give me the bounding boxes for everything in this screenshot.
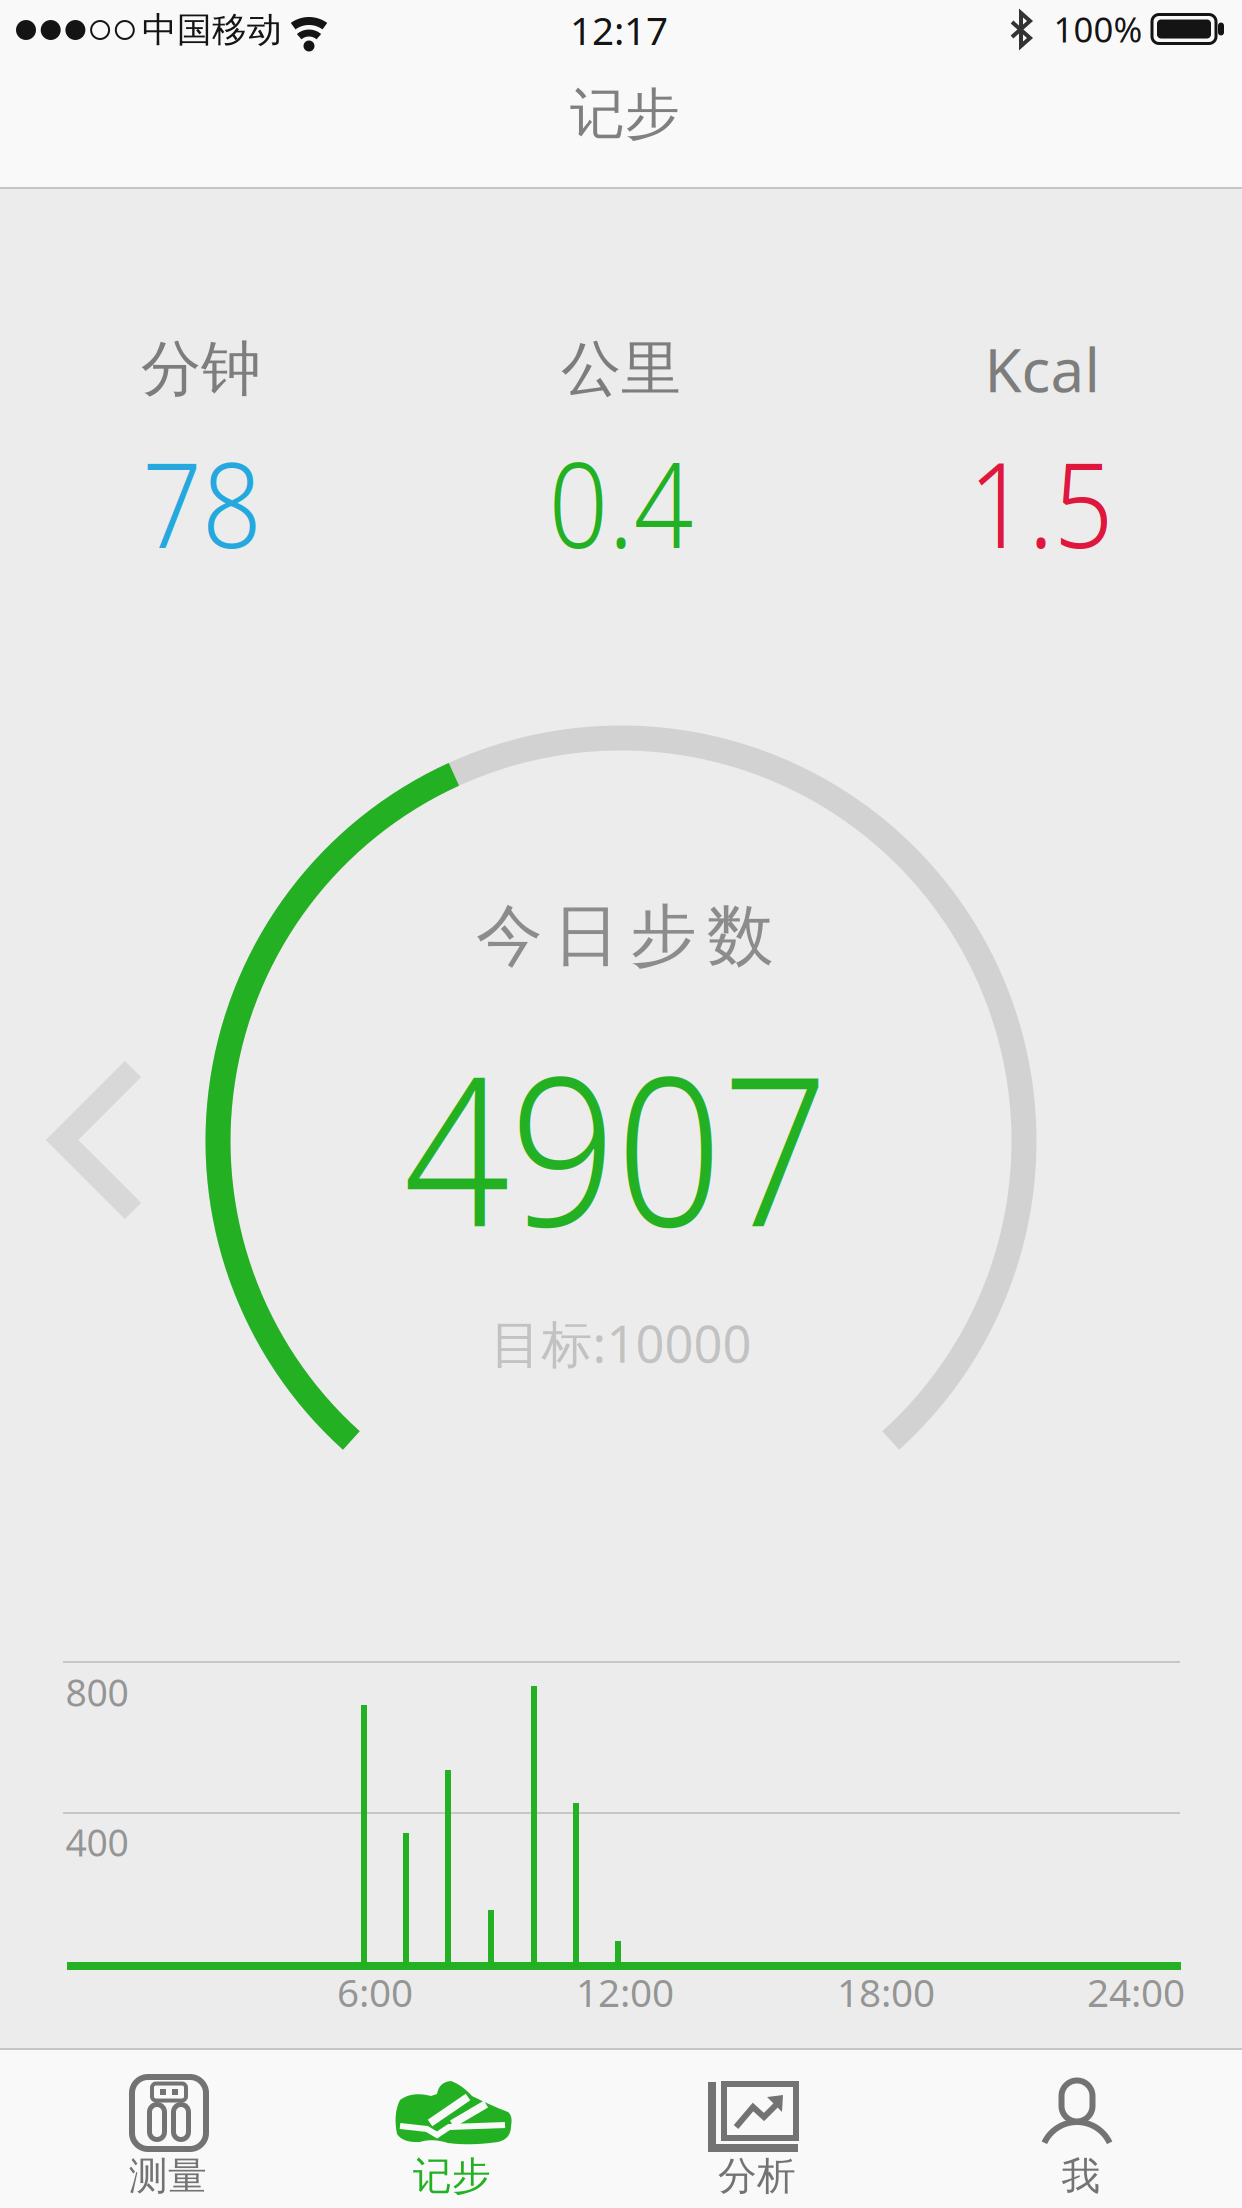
staticText: 12:17: [570, 4, 668, 56]
staticText: 中国移动: [142, 9, 282, 51]
staticText: 今日步数: [476, 895, 774, 977]
staticText: 78: [134, 423, 270, 581]
staticText: 记步: [570, 80, 680, 147]
staticText: 公里: [561, 332, 681, 406]
staticText: 18:00: [837, 1966, 935, 2018]
staticText: 我: [1061, 2152, 1100, 2200]
staticText: 1.5: [958, 423, 1123, 581]
staticText: 800: [65, 1667, 128, 1717]
staticText: 分钟: [141, 332, 261, 406]
staticText: 记步: [413, 2152, 491, 2200]
staticText: 24:00: [1087, 1966, 1185, 2018]
staticText: 6:00: [337, 1966, 413, 2018]
staticText: 目标:10000: [490, 1309, 751, 1377]
staticText: 分析: [718, 2152, 796, 2200]
staticText: 100%: [1053, 6, 1142, 52]
staticText: 400: [65, 1817, 128, 1867]
staticText: 测量: [129, 2152, 207, 2200]
staticText: 4907: [380, 1009, 852, 1283]
staticText: Kcal: [984, 329, 1099, 409]
staticText: 12:00: [576, 1966, 674, 2018]
staticText: 0.4: [538, 423, 703, 581]
